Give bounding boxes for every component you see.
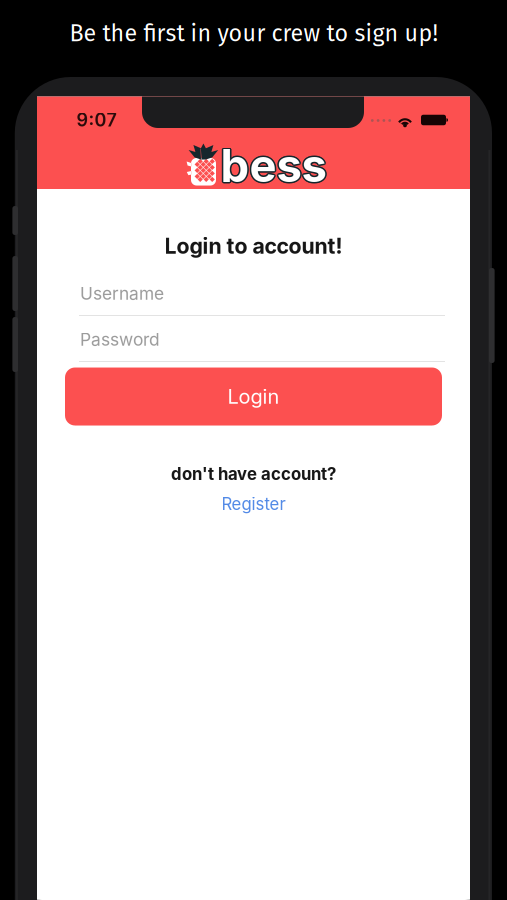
button[interactable]: Username xyxy=(79,281,445,317)
staticText: Login to account! xyxy=(164,233,342,259)
staticText: Password xyxy=(80,329,160,350)
staticText: bess xyxy=(219,139,325,194)
staticText: bess xyxy=(219,137,325,192)
button[interactable]: Login xyxy=(65,367,442,425)
staticText: 9:07 xyxy=(76,109,116,131)
staticText: Be the first in your crew to sign up! xyxy=(69,20,438,47)
staticText: bess xyxy=(220,137,326,192)
staticText: don't have account? xyxy=(171,464,336,484)
staticText: bess xyxy=(222,138,328,193)
staticText: Username xyxy=(80,283,164,304)
button[interactable]: Password xyxy=(79,327,445,363)
staticText: bess xyxy=(220,139,326,194)
button[interactable]: Register xyxy=(208,492,298,516)
staticText: bess xyxy=(219,138,325,193)
staticText: Login xyxy=(227,384,279,409)
staticText: bess xyxy=(220,138,326,193)
staticText: bess xyxy=(221,139,327,194)
staticText: Register xyxy=(221,494,285,514)
staticText: bess xyxy=(221,137,327,192)
